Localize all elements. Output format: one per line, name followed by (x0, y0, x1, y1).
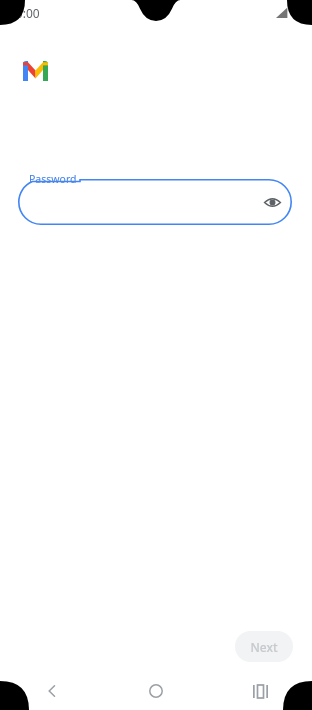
button[interactable]: Show password (257, 187, 287, 217)
button[interactable]: Next (235, 631, 293, 662)
staticText: Next (250, 639, 278, 655)
other: Gmail (23, 61, 48, 81)
staticText: Password (29, 172, 77, 186)
button[interactable]: Show password (18, 179, 292, 225)
staticText: 10:00 (9, 5, 40, 21)
button[interactable]: Back (0, 672, 104, 710)
button[interactable]: Recent apps (208, 672, 312, 710)
button[interactable]: Home (104, 672, 208, 710)
